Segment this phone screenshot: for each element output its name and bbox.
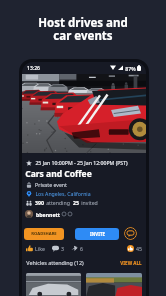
- button[interactable]: ROADSHARE: [24, 228, 64, 240]
- staticText: 6: [80, 245, 83, 252]
- staticText: Cars and Coffee: [25, 168, 92, 180]
- button[interactable]: [86, 273, 142, 296]
- staticText: Los Angeles, California: [35, 190, 91, 197]
- staticText: car events: [53, 28, 113, 44]
- staticText: Private event: [35, 181, 67, 188]
- staticText: bbennett: [36, 211, 60, 218]
- staticText: Host drives and: [38, 15, 128, 31]
- button[interactable]: VIEW ALL: [120, 260, 142, 266]
- button[interactable]: 6: [71, 245, 83, 252]
- staticText: invited: [81, 199, 98, 206]
- staticText: 87%: [125, 65, 136, 72]
- staticText: 13:26: [27, 65, 40, 72]
- staticText: 25 Jan 10:00PM - 25 Jan 12:00PM (PST): [35, 159, 128, 166]
- button[interactable]: INVITE: [75, 228, 119, 240]
- staticText: 25: [73, 199, 79, 206]
- staticText: ROADSHARE: [31, 231, 57, 237]
- staticText: 3: [61, 245, 64, 252]
- staticText: 390: [35, 199, 44, 206]
- staticText: 45: [136, 245, 142, 252]
- button[interactable]: Like: [26, 245, 45, 252]
- staticText: INVITE: [90, 231, 105, 237]
- staticText: Vehicles attending (12): [26, 259, 84, 266]
- staticText: Like: [35, 245, 45, 252]
- button[interactable]: 3: [52, 245, 64, 252]
- staticText: attending: [46, 199, 70, 206]
- button[interactable]: Chat: [124, 227, 137, 240]
- button[interactable]: [26, 273, 81, 296]
- staticText: VIEW ALL: [120, 260, 142, 266]
